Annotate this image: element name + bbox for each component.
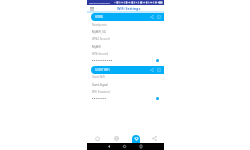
staticText: allow-modsgroups (89, 1, 110, 4)
button[interactable]: Network details (155, 13, 162, 21)
staticText: GUEST WiFi (95, 68, 110, 72)
button[interactable]: Share network (148, 66, 155, 74)
button[interactable]: Discover (107, 130, 126, 143)
staticText: WiFi Settings (117, 6, 141, 11)
button[interactable]: Back (106, 143, 111, 150)
button[interactable]: GUEST WiFi (91, 66, 164, 74)
staticText: Nearby nets (92, 23, 107, 27)
button[interactable]: Home (122, 143, 127, 150)
staticText: Guest WiFi (92, 75, 105, 79)
staticText: WiFi Password (92, 90, 110, 94)
button[interactable]: HOME (91, 13, 164, 21)
staticText: Guest Signal (92, 83, 108, 87)
staticText: MyWiFi (92, 45, 102, 49)
button[interactable]: Share network (148, 13, 155, 21)
staticText: MyWiFi_5G (92, 30, 106, 34)
staticText: WPA2 Secured (92, 37, 110, 41)
staticText: WPA Secured (92, 52, 108, 56)
staticText: HOME (95, 15, 104, 19)
button[interactable]: Recent apps (138, 143, 143, 150)
button[interactable]: Share (145, 130, 164, 143)
button[interactable]: WiFi (126, 130, 145, 143)
button[interactable]: Network details (155, 66, 162, 74)
button[interactable]: Menu (89, 5, 95, 12)
button[interactable]: Home (87, 130, 107, 143)
